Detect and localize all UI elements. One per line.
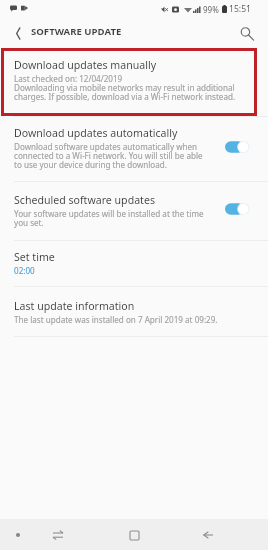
staticText: Download updates automatically xyxy=(14,126,178,140)
button[interactable]: Set time xyxy=(0,241,268,286)
button[interactable]: Home xyxy=(120,521,148,549)
button[interactable]: Toggle on xyxy=(225,140,249,154)
staticText: 99% xyxy=(203,4,219,15)
staticText: The last update was installed on 7 April… xyxy=(14,314,218,325)
staticText: Last update information xyxy=(14,299,135,313)
staticText: Last checked on: 12/04/2019 Downloading … xyxy=(14,73,238,102)
button[interactable]: Back xyxy=(194,521,222,549)
staticText: SOFTWARE UPDATE xyxy=(31,25,122,38)
button[interactable]: Toggle on xyxy=(225,202,249,216)
staticText: Download updates manually xyxy=(14,58,157,72)
staticText: Scheduled software updates xyxy=(14,193,155,207)
staticText: Set time xyxy=(14,250,55,264)
button[interactable]: Download updates automatically xyxy=(0,117,268,181)
button[interactable]: Recent apps xyxy=(44,521,72,549)
button[interactable]: Last update information xyxy=(0,287,268,336)
staticText: 15:51 xyxy=(229,3,251,15)
button[interactable]: Scheduled software updates xyxy=(0,182,268,240)
staticText: Your software updates will be installed … xyxy=(14,208,206,228)
button[interactable]: Search xyxy=(238,25,254,41)
staticText: 02:00 xyxy=(14,265,35,276)
button[interactable]: Download updates manually xyxy=(0,48,268,116)
staticText: Download software updates automatically … xyxy=(14,141,206,170)
button[interactable]: Menu xyxy=(4,521,32,549)
button[interactable]: Back xyxy=(8,25,24,41)
